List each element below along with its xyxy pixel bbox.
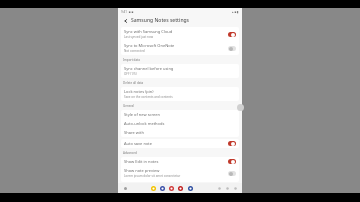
button[interactable]: Home bbox=[224, 185, 230, 191]
button[interactable]: Toggle off bbox=[228, 171, 236, 176]
staticText: Style of new screen bbox=[124, 112, 161, 117]
staticText: Share with bbox=[124, 130, 144, 135]
button[interactable]: Recents bbox=[232, 185, 238, 191]
button[interactable]: Crimson pen bbox=[177, 185, 184, 192]
button[interactable]: Sync with Samsung Cloud bbox=[121, 27, 239, 41]
staticText: 9:41 ▪ ▪ bbox=[121, 10, 134, 14]
button[interactable]: Auto-unlock methods bbox=[121, 119, 239, 128]
staticText: Sync to Microsoft OneNote bbox=[124, 43, 175, 48]
staticText: Show Edit in notes bbox=[124, 159, 159, 164]
button[interactable]: Auto save note bbox=[121, 139, 239, 148]
button[interactable]: Toggle off bbox=[228, 46, 236, 51]
staticText: Lorem ipsum dolor sit amet consectetur bbox=[124, 174, 181, 178]
staticText: Import data bbox=[123, 58, 140, 62]
staticText: Sync with Samsung Cloud bbox=[124, 29, 173, 34]
staticText: ▴ ▪ ▮ bbox=[232, 10, 239, 14]
button[interactable]: Sync channel before using bbox=[121, 64, 239, 78]
staticText: Show note preview bbox=[124, 168, 160, 173]
button[interactable]: Navy pen bbox=[187, 185, 194, 192]
button[interactable]: Yellow pen bbox=[150, 185, 157, 192]
button[interactable]: Show Edit in notes bbox=[121, 157, 239, 166]
staticText: Sync channel before using bbox=[124, 66, 174, 71]
button[interactable]: Style of new screen bbox=[121, 110, 239, 119]
staticText: Lock notes (pin) bbox=[124, 89, 154, 94]
button[interactable]: Share with bbox=[121, 128, 239, 137]
staticText: Samsung Notes settings bbox=[131, 17, 190, 24]
staticText: Not connected bbox=[124, 49, 145, 53]
staticText: Delete all data bbox=[123, 81, 144, 85]
button[interactable]: Menu bbox=[122, 185, 128, 191]
staticText: Auto save note bbox=[124, 141, 153, 146]
button[interactable]: Back bbox=[216, 185, 222, 191]
staticText: Save on the contents and contents bbox=[124, 95, 173, 99]
staticText: Advanced bbox=[123, 151, 137, 155]
button[interactable]: Sync to Microsoft OneNote bbox=[121, 41, 239, 55]
staticText: General bbox=[123, 104, 135, 108]
button[interactable]: Show note preview bbox=[121, 166, 239, 180]
staticText: Last synced just now bbox=[124, 35, 154, 39]
button[interactable]: Toggle on bbox=[228, 159, 236, 164]
button[interactable]: Blue pen bbox=[159, 185, 166, 192]
button[interactable]: Navigate up bbox=[121, 16, 130, 25]
button[interactable]: Lock notes (pin) bbox=[121, 87, 239, 101]
button[interactable]: Toggle on bbox=[228, 141, 236, 146]
button[interactable]: Toggle on bbox=[228, 32, 236, 37]
staticText: OFF (1/5) bbox=[124, 72, 137, 76]
button[interactable]: Red pen bbox=[168, 185, 175, 192]
staticText: Auto-unlock methods bbox=[124, 121, 165, 126]
